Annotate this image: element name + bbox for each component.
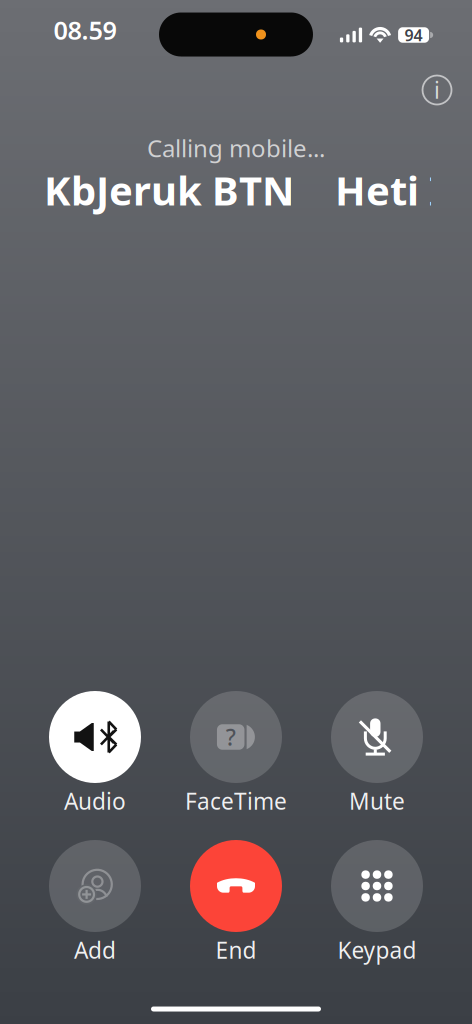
button[interactable]: Mute <box>315 691 439 813</box>
staticText: Calling mobile... <box>147 132 325 164</box>
staticText: Mute <box>349 786 405 816</box>
staticText: 08.59 <box>53 13 116 47</box>
staticText: Add <box>74 935 116 965</box>
staticText: i <box>434 75 440 105</box>
staticText: Keypad <box>337 935 416 965</box>
staticText: FaceTime <box>185 786 287 816</box>
button[interactable]: Audio <box>33 691 157 813</box>
staticText: Audio <box>64 786 126 816</box>
button[interactable]: ? <box>174 691 298 813</box>
button[interactable]: Add <box>33 840 157 962</box>
button[interactable]: Keypad <box>315 840 439 962</box>
button[interactable]: End <box>174 840 298 962</box>
staticText: ? <box>226 722 236 752</box>
staticText: Heti Indrawati <box>335 163 472 216</box>
button[interactable]: Call details <box>415 68 459 112</box>
staticText: End <box>215 935 256 965</box>
staticText: KbJeruk BTN <box>44 163 295 216</box>
staticText: 94 <box>405 24 423 46</box>
